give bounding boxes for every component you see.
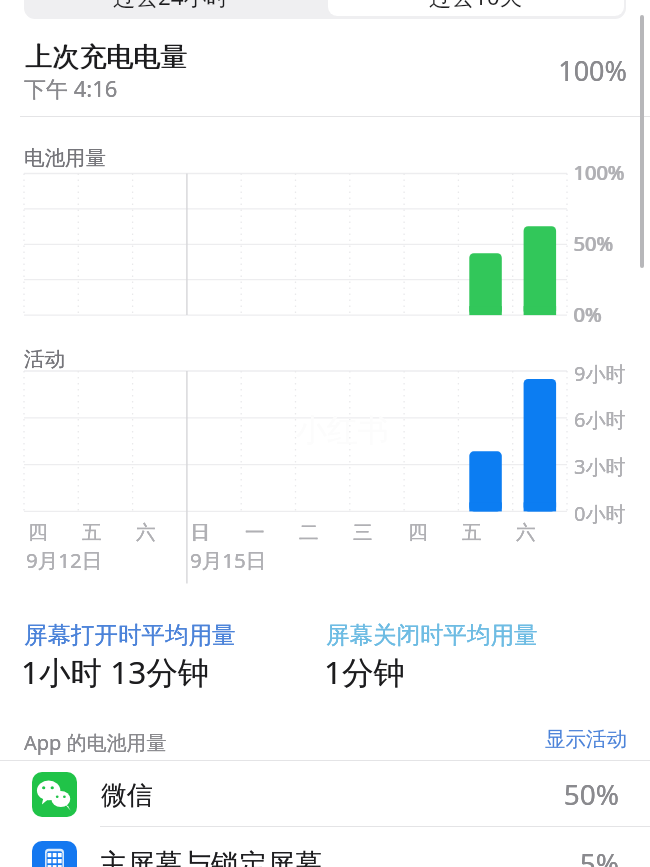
staticText: 1分钟	[324, 650, 406, 693]
button[interactable]: 显示活动	[490, 724, 627, 754]
staticText: 过去24小时	[113, 0, 229, 12]
staticText: 100%	[390, 52, 627, 89]
staticText: 五	[462, 520, 482, 545]
staticText: 日	[190, 520, 210, 545]
staticText: 50%	[573, 230, 613, 257]
staticText: 50%	[450, 775, 619, 813]
staticText: 过去10天	[429, 0, 523, 12]
staticText: 9小时	[574, 360, 626, 387]
staticText: 上次充电电量	[25, 40, 187, 74]
staticText: 下午 4:16	[24, 73, 118, 103]
staticText: 显示活动	[545, 726, 627, 752]
staticText: 六	[516, 520, 536, 545]
staticText: 六	[136, 520, 156, 545]
staticText: 0小时	[574, 500, 626, 527]
staticText: 一	[245, 520, 265, 545]
staticText: App 的电池用量	[24, 729, 167, 756]
staticText: 5%	[450, 844, 619, 867]
staticText: 6小时	[574, 406, 626, 433]
staticText: 100%	[573, 159, 624, 186]
staticText: 二	[299, 520, 319, 545]
button[interactable]: 微信	[0, 761, 650, 827]
staticText: 屏幕打开时平均用量	[24, 620, 236, 650]
staticText: 3小时	[574, 453, 626, 480]
button[interactable]: 主屏幕与锁定屏幕	[0, 828, 650, 867]
other: Scroll indicator	[640, 15, 644, 268]
staticText: 三	[353, 520, 373, 545]
button[interactable]: 过去24小时	[20, 0, 321, 21]
button[interactable]: 过去10天	[325, 0, 626, 21]
staticText: 9月12日	[26, 546, 103, 574]
staticText: 主屏幕与锁定屏幕	[99, 847, 323, 867]
staticText: 9月15日	[190, 546, 267, 574]
staticText: 0%	[573, 301, 602, 328]
staticText: 电池用量	[24, 145, 106, 171]
staticText: 微信	[101, 779, 153, 812]
staticText: 五	[82, 520, 102, 545]
staticText: 1小时 13分钟	[21, 650, 210, 693]
staticText: 四	[28, 520, 48, 545]
staticText: 四	[408, 520, 428, 545]
staticText: 活动	[24, 346, 65, 372]
staticText: 屏幕关闭时平均用量	[326, 620, 538, 650]
